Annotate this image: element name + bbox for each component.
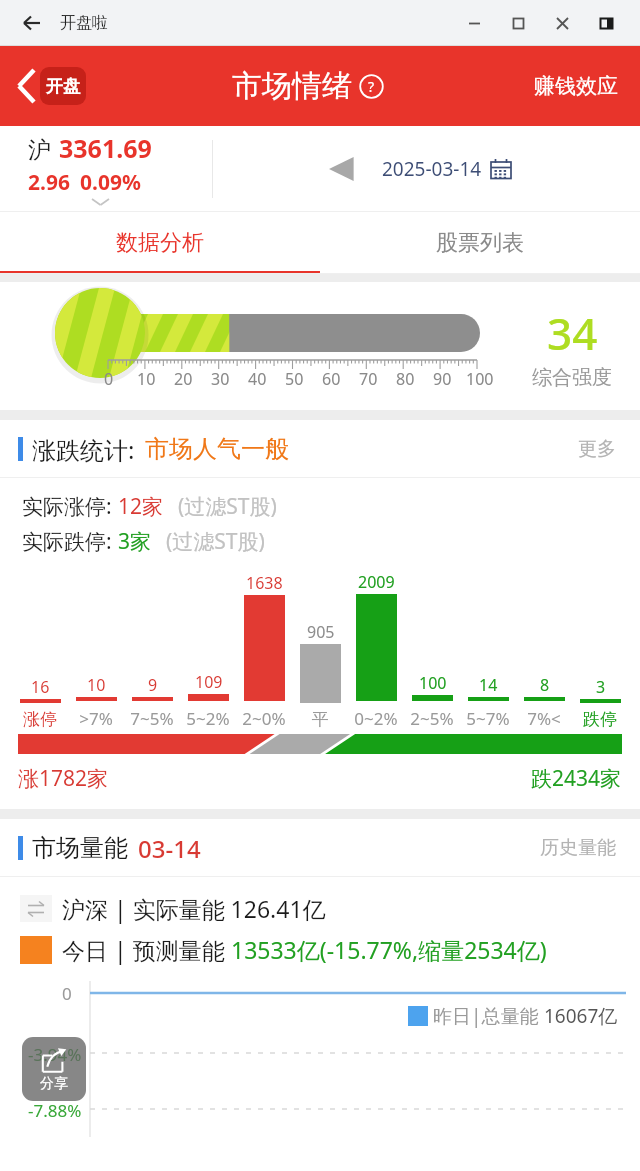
staticText: 80 xyxy=(396,368,415,390)
staticText: 16067亿 xyxy=(544,1003,618,1029)
staticText: 2~0% xyxy=(236,707,292,730)
staticText: 赚钱效应 xyxy=(534,73,618,99)
staticText: 2009 xyxy=(358,571,395,593)
staticText: 沪 xyxy=(28,136,51,165)
staticText: 70 xyxy=(359,368,378,390)
staticText: 50 xyxy=(285,368,304,390)
staticText: 跌2434家 xyxy=(531,764,622,793)
staticText: 8 xyxy=(540,674,550,696)
staticText: 更多 xyxy=(578,437,616,461)
button[interactable]: Close xyxy=(540,1,584,45)
staticText: 开盘啦 xyxy=(60,13,108,33)
button[interactable]: 2025-03-14 xyxy=(370,148,524,190)
staticText: 历史量能 xyxy=(540,836,616,860)
staticText: 3 xyxy=(596,676,606,698)
staticText: 开盘 xyxy=(46,76,80,97)
staticText: -7.88% xyxy=(28,1099,82,1122)
staticText: 03-14 xyxy=(138,832,201,865)
staticText: 10 xyxy=(87,674,106,696)
staticText: 市场情绪 xyxy=(232,67,352,105)
staticText: 股票列表 xyxy=(436,229,524,257)
button[interactable]: Back xyxy=(16,7,48,39)
staticText: 90 xyxy=(433,368,452,390)
staticText: 0 xyxy=(104,368,114,390)
staticText: 涨跌统计: xyxy=(32,433,135,466)
staticText: 涨1782家 xyxy=(18,764,109,793)
staticText: 100 xyxy=(466,368,494,390)
button[interactable]: 股票列表 xyxy=(320,212,640,274)
button[interactable]: Back xyxy=(14,60,86,112)
staticText: 跌停 xyxy=(572,709,628,730)
staticText: 2.96 xyxy=(28,168,70,197)
staticText: 平 xyxy=(292,709,348,730)
button[interactable]: 市场情绪 xyxy=(232,67,384,105)
staticText: 7~5% xyxy=(124,707,180,730)
button[interactable]: 今日 | 预测量能 xyxy=(20,934,547,965)
button[interactable]: Share xyxy=(22,1037,86,1101)
staticText: 1638 xyxy=(246,572,283,594)
staticText: (过滤ST股) xyxy=(166,527,265,556)
staticText: (过滤ST股) xyxy=(178,492,277,521)
staticText: 0~2% xyxy=(348,707,404,730)
button[interactable]: Switch market xyxy=(20,893,326,924)
staticText: 7%< xyxy=(516,707,572,730)
staticText: 涨停 xyxy=(12,709,68,730)
staticText: ? xyxy=(368,77,375,96)
staticText: -3.94% xyxy=(28,1043,82,1066)
staticText: 12家 xyxy=(118,492,164,521)
staticText: 100 xyxy=(419,672,447,694)
staticText: 13533亿(-15.77%,缩量2534亿) xyxy=(231,934,547,965)
other: Switch market xyxy=(20,895,52,922)
staticText: 9 xyxy=(148,674,158,696)
staticText: 40 xyxy=(248,368,267,390)
button[interactable]: Split view xyxy=(584,1,628,45)
staticText: 5~7% xyxy=(460,707,516,730)
button[interactable]: 历史量能 xyxy=(536,832,620,864)
staticText: 数据分析 xyxy=(116,229,204,257)
staticText: 5~2% xyxy=(180,707,236,730)
button[interactable]: 更多 xyxy=(574,433,620,465)
staticText: 2~5% xyxy=(404,707,460,730)
staticText: 30 xyxy=(211,368,230,390)
staticText: 60 xyxy=(322,368,341,390)
staticText: 34 xyxy=(547,303,598,363)
button[interactable]: 数据分析 xyxy=(0,212,320,274)
staticText: 今日 | 预测量能 xyxy=(62,934,231,965)
staticText: 分享 xyxy=(40,1075,68,1093)
staticText: 实际跌停: xyxy=(22,527,118,556)
staticText: >7% xyxy=(68,707,124,730)
staticText: 10 xyxy=(137,368,156,390)
staticText: 0 xyxy=(62,982,72,1005)
staticText: 14 xyxy=(479,674,498,696)
staticText: 市场量能 xyxy=(32,833,128,863)
staticText: 昨日|总量能 xyxy=(433,1003,544,1029)
staticText: 109 xyxy=(195,671,223,693)
button[interactable]: 赚钱效应 xyxy=(530,69,622,103)
button[interactable]: Previous day xyxy=(326,151,356,187)
staticText: 3361.69 xyxy=(59,131,152,165)
button[interactable]: 沪 xyxy=(0,126,212,212)
button[interactable]: Maximize xyxy=(496,1,540,45)
staticText: 20 xyxy=(174,368,193,390)
staticText: 3家 xyxy=(118,527,152,556)
staticText: 沪深 | 实际量能 126.41亿 xyxy=(62,893,326,924)
staticText: 实际涨停: xyxy=(22,492,118,521)
staticText: 0.09% xyxy=(80,168,141,197)
staticText: 市场人气一般 xyxy=(145,434,289,464)
staticText: 16 xyxy=(31,676,50,698)
staticText: 905 xyxy=(307,621,335,643)
staticText: 2025-03-14 xyxy=(382,156,482,182)
staticText: 综合强度 xyxy=(532,365,612,390)
button[interactable]: Minimize xyxy=(452,1,496,45)
